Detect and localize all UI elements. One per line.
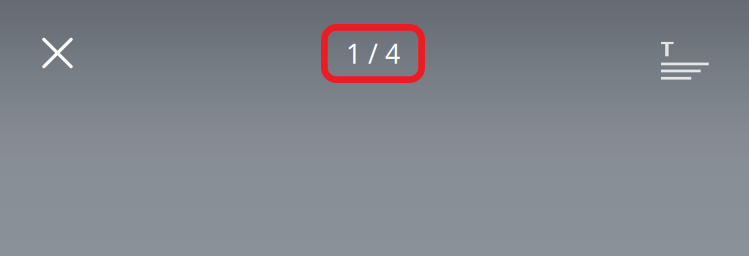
button[interactable]: 1 / 4 bbox=[321, 24, 425, 83]
button[interactable]: Text format bbox=[652, 32, 718, 94]
staticText: 1 / 4 bbox=[346, 36, 400, 71]
button[interactable]: Close bbox=[29, 25, 85, 81]
